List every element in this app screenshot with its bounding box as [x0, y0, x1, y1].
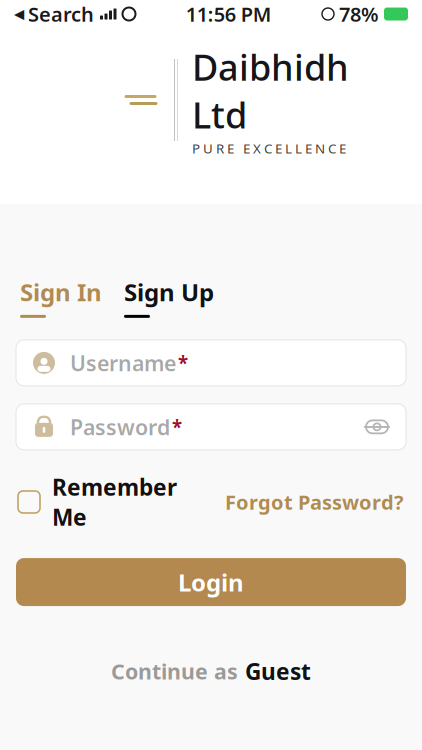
- staticText: Sign In: [20, 276, 102, 308]
- staticText: Guest: [245, 656, 311, 686]
- button[interactable]: Forgot Password?: [225, 489, 404, 515]
- button[interactable]: Password: [16, 404, 406, 450]
- staticText: Daibhidh Ltd: [192, 43, 349, 138]
- button[interactable]: Sign In: [20, 276, 102, 318]
- staticText: *: [172, 414, 182, 439]
- staticText: 78%: [339, 1, 379, 27]
- staticText: Remember Me: [52, 472, 177, 532]
- staticText: Search: [28, 1, 94, 27]
- staticText: Password: [70, 413, 170, 441]
- staticText: *: [178, 350, 188, 375]
- staticText: Login: [178, 566, 244, 598]
- staticText: Sign Up: [124, 276, 214, 308]
- staticText: Username: [70, 349, 176, 377]
- staticText: P U R E E X C E L L E N C E: [192, 139, 346, 157]
- staticText: Continue as: [111, 657, 238, 685]
- button[interactable]: Username: [16, 340, 406, 386]
- staticText: ◀: [14, 6, 24, 21]
- button[interactable]: Remember Me: [18, 472, 177, 532]
- staticText: Forgot Password?: [225, 489, 404, 515]
- staticText: 11:56 PM: [186, 1, 272, 27]
- button[interactable]: Login: [16, 558, 406, 606]
- button[interactable]: Continue as: [0, 656, 422, 686]
- button[interactable]: Sign Up: [124, 276, 214, 318]
